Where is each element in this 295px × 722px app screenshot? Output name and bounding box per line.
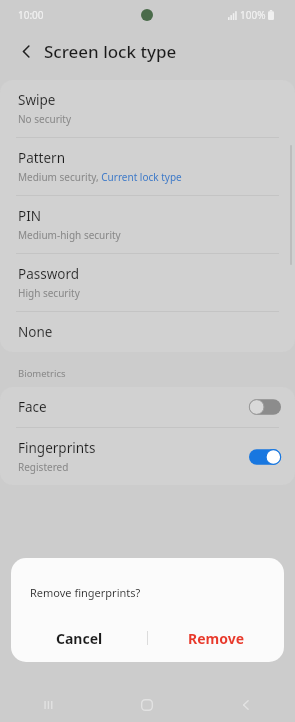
staticText: Screen lock type xyxy=(44,40,177,63)
button[interactable]: Swipe xyxy=(0,80,295,137)
button[interactable]: Back xyxy=(12,37,40,65)
button[interactable]: Password xyxy=(0,254,295,311)
button[interactable]: On xyxy=(249,448,281,466)
staticText: 10:00 xyxy=(18,8,44,22)
button[interactable]: Cancel xyxy=(11,614,147,662)
button[interactable]: PIN xyxy=(0,196,295,253)
button[interactable]: None xyxy=(0,312,295,352)
button[interactable]: Pattern xyxy=(0,138,295,195)
staticText: Medium-high security xyxy=(18,228,121,242)
staticText: Face xyxy=(18,398,47,416)
staticText: High security xyxy=(18,286,80,300)
staticText: Remove fingerprints? xyxy=(30,585,141,600)
staticText: Swipe xyxy=(18,91,56,109)
staticText: Cancel xyxy=(56,629,103,648)
button[interactable]: Off xyxy=(249,398,281,416)
button[interactable]: Face xyxy=(0,387,295,427)
staticText: Medium security, Current lock type xyxy=(18,170,182,184)
button[interactable]: Fingerprints xyxy=(0,428,295,485)
staticText: Password xyxy=(18,265,80,283)
button[interactable]: Remove xyxy=(148,614,284,662)
staticText: Remove xyxy=(188,629,245,648)
staticText: No security xyxy=(18,112,72,126)
staticText: Pattern xyxy=(18,149,66,167)
staticText: None xyxy=(18,323,53,341)
staticText: Fingerprints xyxy=(18,439,96,457)
staticText: Registered xyxy=(18,460,69,474)
staticText: PIN xyxy=(18,207,42,225)
staticText: Biometrics xyxy=(18,367,66,380)
button[interactable]: Home xyxy=(127,688,167,722)
staticText: 100% xyxy=(240,8,266,22)
